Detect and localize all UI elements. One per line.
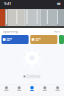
button[interactable]: Activity (38, 84, 51, 92)
button[interactable]: Profile (51, 84, 64, 92)
button[interactable]: Search (13, 84, 26, 92)
button[interactable]: Add (26, 84, 38, 92)
button[interactable]: Card (1, 35, 29, 44)
staticText: Upcoming (3, 30, 18, 33)
button[interactable]: Card (30, 35, 57, 44)
staticText: 9:41 (4, 1, 11, 6)
staticText: Continue (26, 75, 40, 78)
button[interactable]: Continue (22, 74, 42, 79)
button[interactable]: Home (0, 84, 13, 92)
staticText: More (54, 30, 61, 33)
staticText: ▮▮▮ (57, 2, 60, 5)
